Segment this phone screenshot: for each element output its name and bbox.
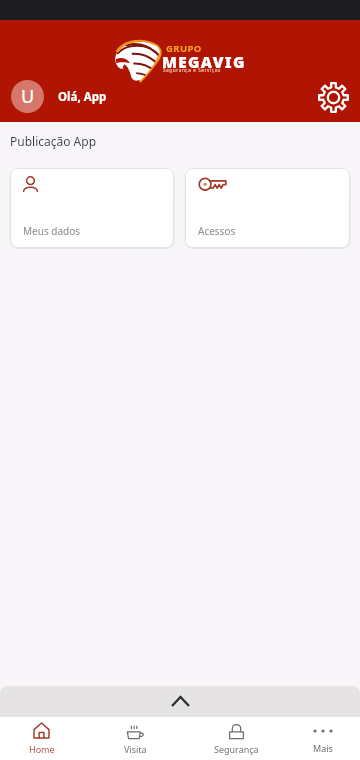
staticText: Acessos	[198, 224, 236, 238]
staticText: U	[21, 84, 35, 109]
staticText: Meus dados	[23, 224, 81, 238]
button[interactable]: Home	[0, 717, 83, 760]
button[interactable]: Meus dados	[10, 168, 174, 248]
staticText: MEGAVIG	[162, 51, 246, 72]
button[interactable]: Segurança	[187, 717, 285, 760]
button[interactable]: Settings	[316, 80, 350, 114]
button[interactable]: Mais	[285, 717, 360, 760]
staticText: Olá, App	[58, 89, 107, 105]
staticText: GRUPO	[166, 42, 202, 55]
button[interactable]: Visita	[83, 717, 187, 760]
staticText: Segurança	[214, 743, 259, 755]
staticText: Segurança e Serviços	[163, 67, 221, 73]
button[interactable]: U	[6, 76, 113, 117]
button[interactable]: Acessos	[185, 168, 350, 248]
staticText: Visita	[124, 743, 147, 755]
staticText: Publicação App	[10, 133, 97, 149]
button[interactable]: Expand panel	[0, 686, 360, 717]
staticText: Mais	[313, 742, 333, 754]
staticText: Home	[29, 743, 55, 755]
